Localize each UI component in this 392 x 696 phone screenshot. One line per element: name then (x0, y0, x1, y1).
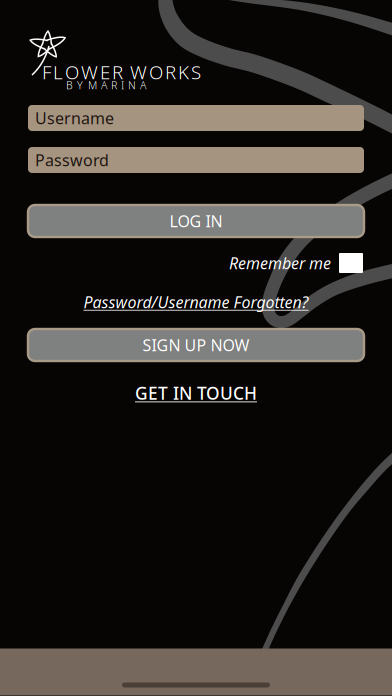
button[interactable]: Remember me (339, 253, 363, 273)
button[interactable]: GET IN TOUCH (135, 381, 257, 404)
staticText: F L O W E R W O R K S (42, 60, 201, 84)
staticText: B Y M A R I N A (66, 78, 146, 92)
staticText: Username (35, 107, 114, 129)
button[interactable]: Password/Username Forgotten? (83, 291, 308, 313)
button[interactable]: SIGN UP NOW (28, 329, 364, 361)
staticText: LOG IN (169, 210, 222, 232)
button[interactable]: LOG IN (28, 205, 364, 237)
staticText: GET IN TOUCH (135, 381, 257, 404)
staticText: SIGN UP NOW (142, 334, 249, 356)
staticText: Password/Username Forgotten? (83, 291, 308, 313)
staticText: Remember me (229, 252, 331, 274)
staticText: Password (35, 149, 109, 171)
